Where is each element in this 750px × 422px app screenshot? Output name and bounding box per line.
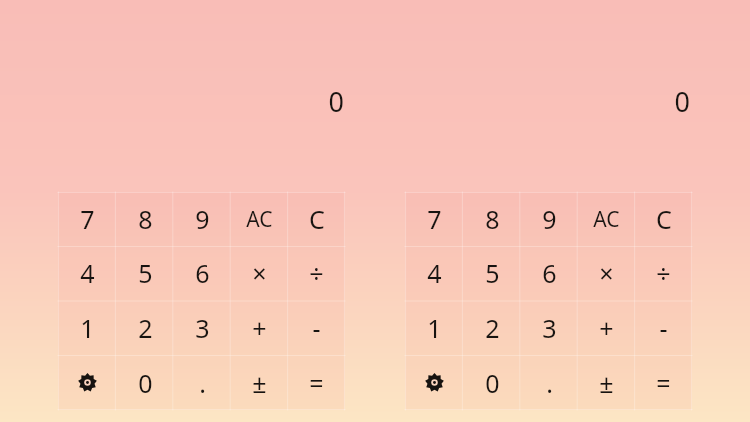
button[interactable]: Settings xyxy=(405,355,463,410)
staticText: C xyxy=(309,202,325,236)
staticText: = xyxy=(656,366,671,400)
staticText: - xyxy=(659,311,668,345)
staticText: × xyxy=(252,256,267,290)
staticText: 3 xyxy=(195,311,210,345)
staticText: AC xyxy=(246,205,273,234)
button[interactable]: 9 xyxy=(174,192,231,246)
button[interactable]: ± xyxy=(578,355,635,410)
staticText: + xyxy=(599,311,614,345)
staticText: 5 xyxy=(485,256,500,290)
staticText: 7 xyxy=(427,202,442,236)
staticText: × xyxy=(599,256,614,290)
staticText: . xyxy=(546,366,553,400)
staticText: 9 xyxy=(195,202,210,236)
staticText: ÷ xyxy=(656,256,671,290)
button[interactable]: ÷ xyxy=(288,246,345,300)
staticText: 5 xyxy=(138,256,153,290)
button[interactable]: + xyxy=(231,300,288,355)
button[interactable]: × xyxy=(231,246,288,300)
staticText: 6 xyxy=(195,256,210,290)
button[interactable]: 0 xyxy=(463,355,521,410)
staticText: 3 xyxy=(542,311,557,345)
button[interactable]: 2 xyxy=(116,300,174,355)
staticText: 2 xyxy=(138,311,153,345)
staticText: = xyxy=(309,366,324,400)
button[interactable]: 6 xyxy=(174,246,231,300)
button[interactable]: ÷ xyxy=(635,246,692,300)
button[interactable]: 1 xyxy=(58,300,116,355)
button[interactable]: 8 xyxy=(463,192,521,246)
staticText: C xyxy=(656,202,672,236)
staticText: ± xyxy=(252,366,267,400)
button[interactable]: 4 xyxy=(58,246,116,300)
button[interactable]: 5 xyxy=(463,246,521,300)
button[interactable]: 7 xyxy=(58,192,116,246)
button[interactable]: AC xyxy=(578,192,635,246)
button[interactable]: 1 xyxy=(405,300,463,355)
staticText: AC xyxy=(593,205,620,234)
button[interactable]: - xyxy=(635,300,692,355)
staticText: 0 xyxy=(138,366,153,400)
button[interactable]: . xyxy=(174,355,231,410)
staticText: 1 xyxy=(80,311,95,345)
button[interactable]: Settings xyxy=(58,355,116,410)
button[interactable]: . xyxy=(521,355,578,410)
staticText: 9 xyxy=(542,202,557,236)
button[interactable]: 0 xyxy=(116,355,174,410)
staticText: 8 xyxy=(485,202,500,236)
button[interactable]: 3 xyxy=(174,300,231,355)
button[interactable]: + xyxy=(578,300,635,355)
staticText: ± xyxy=(599,366,614,400)
button[interactable]: 2 xyxy=(463,300,521,355)
staticText: . xyxy=(199,366,206,400)
button[interactable]: 7 xyxy=(405,192,463,246)
button[interactable]: × xyxy=(578,246,635,300)
button[interactable]: - xyxy=(288,300,345,355)
button[interactable]: 3 xyxy=(521,300,578,355)
button[interactable]: AC xyxy=(231,192,288,246)
button[interactable]: 6 xyxy=(521,246,578,300)
staticText: 0 xyxy=(328,83,344,120)
button[interactable]: = xyxy=(288,355,345,410)
staticText: 0 xyxy=(485,366,500,400)
button[interactable]: ± xyxy=(231,355,288,410)
staticText: 8 xyxy=(138,202,153,236)
button[interactable]: C xyxy=(288,192,345,246)
staticText: ÷ xyxy=(309,256,324,290)
staticText: + xyxy=(252,311,267,345)
staticText: 4 xyxy=(427,256,442,290)
staticText: 4 xyxy=(80,256,95,290)
button[interactable]: C xyxy=(635,192,692,246)
button[interactable]: 5 xyxy=(116,246,174,300)
staticText: 2 xyxy=(485,311,500,345)
staticText: 7 xyxy=(80,202,95,236)
button[interactable]: = xyxy=(635,355,692,410)
staticText: 0 xyxy=(674,83,690,120)
staticText: 6 xyxy=(542,256,557,290)
button[interactable]: 8 xyxy=(116,192,174,246)
button[interactable]: 4 xyxy=(405,246,463,300)
button[interactable]: 9 xyxy=(521,192,578,246)
staticText: - xyxy=(312,311,321,345)
staticText: 1 xyxy=(427,311,442,345)
